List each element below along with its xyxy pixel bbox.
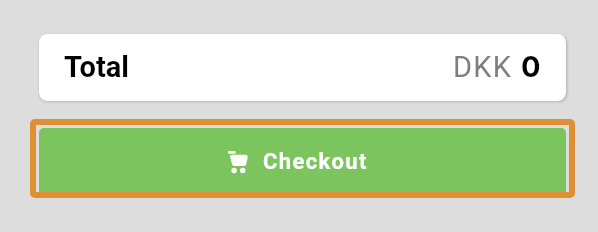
staticText: Checkout xyxy=(263,149,368,175)
button[interactable]: Total xyxy=(39,34,566,101)
staticText: Total xyxy=(64,50,129,84)
button[interactable]: Shopping cart xyxy=(39,128,566,194)
staticText: DKK xyxy=(453,50,513,84)
other: Shopping cart xyxy=(228,151,250,175)
staticText: 0 xyxy=(521,49,541,84)
